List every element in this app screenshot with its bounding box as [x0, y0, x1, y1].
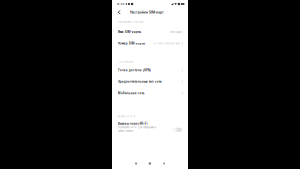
staticText: Вызовы по Wi-Fi — [118, 115, 136, 118]
staticText: +7 912 345-67-89 — [153, 42, 180, 45]
staticText: Точка доступа (APN) — [118, 68, 151, 72]
button[interactable]: Back — [116, 9, 122, 16]
staticText: Личная — [170, 30, 180, 34]
staticText: приёма звонков — [118, 129, 133, 132]
button[interactable]: Home — [146, 160, 154, 167]
staticText: Вызовы через Wi-Fi — [118, 122, 148, 125]
button[interactable]: Точка доступа (APN) — [112, 64, 188, 76]
staticText: 13:42 — [117, 2, 125, 6]
button[interactable]: Recent apps — [133, 160, 139, 167]
button[interactable]: Вызовы через Wi-Fi — [112, 120, 188, 134]
staticText: Предпочтительный тип сети — [118, 80, 162, 83]
staticText: Мобильная сеть — [118, 91, 145, 95]
staticText: Информация о SIM-карте — [118, 20, 144, 23]
button[interactable]: Имя SIM-карты — [112, 26, 188, 38]
button[interactable]: Номер SIM-карты — [112, 38, 188, 49]
staticText: Номер SIM-карты — [118, 42, 145, 45]
staticText: Настройки SIM-карт — [130, 10, 164, 14]
button[interactable]: Предпочтительный тип сети — [112, 76, 188, 87]
button[interactable]: Back — [160, 160, 167, 167]
staticText: Сеть и интернет — [118, 60, 134, 63]
staticText: Имя SIM-карты — [118, 30, 141, 34]
button[interactable]: Мобильная сеть — [112, 87, 188, 99]
staticText: Используйте Wi-Fi для совершения и — [118, 126, 156, 129]
